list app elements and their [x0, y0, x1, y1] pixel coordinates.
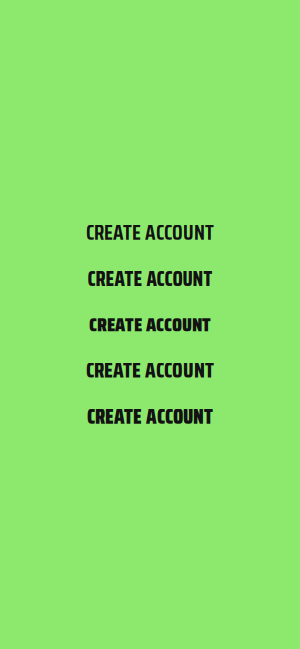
- staticText: CREATE ACCOUNT: [87, 263, 212, 295]
- staticText: CREATE ACCOUNT: [86, 216, 214, 249]
- staticText: CREATE ACCOUNT: [86, 354, 214, 387]
- staticText: CREATE ACCOUNT: [87, 401, 213, 433]
- staticText: CREATE ACCOUNT: [89, 309, 211, 340]
